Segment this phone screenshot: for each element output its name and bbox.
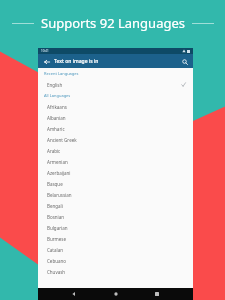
staticText: Bosnian [47, 214, 65, 220]
button[interactable]: Azerbaijani [38, 167, 193, 178]
staticText: Armenian [47, 159, 68, 165]
staticText: Burmese [47, 236, 67, 242]
button[interactable]: Bulgarian [38, 222, 193, 233]
button[interactable]: Arabic [38, 145, 193, 156]
button[interactable]: Bosnian [38, 211, 193, 222]
staticText: 10:41 [41, 49, 49, 53]
staticText: Text on image is in [54, 58, 99, 65]
button[interactable]: Home [111, 289, 121, 299]
button[interactable]: Armenian [38, 156, 193, 167]
staticText: Bulgarian [47, 225, 68, 231]
staticText: Catalan [47, 247, 63, 253]
button[interactable]: Catalan [38, 244, 193, 255]
button[interactable]: Albanian [38, 112, 193, 123]
staticText: Basque [47, 181, 63, 187]
staticText: Afrikaans [47, 104, 67, 110]
staticText: English [47, 82, 63, 88]
button[interactable]: English [38, 79, 193, 90]
button[interactable]: Back [42, 57, 51, 66]
staticText: Ancient Greek [47, 137, 77, 143]
staticText: Chuvash [47, 269, 66, 275]
button[interactable]: Recent apps [152, 289, 162, 299]
button[interactable]: Cebuano [38, 255, 193, 266]
button[interactable]: Bengali [38, 200, 193, 211]
button[interactable]: Back [69, 289, 79, 299]
staticText: Cebuano [47, 258, 66, 264]
staticText: Bengali [47, 203, 63, 209]
staticText: Recent Languages [44, 71, 79, 76]
button[interactable]: Ancient Greek [38, 134, 193, 145]
button[interactable]: Amharic [38, 123, 193, 134]
staticText: Albanian [47, 115, 66, 121]
staticText: Belarussian [47, 192, 72, 198]
button[interactable]: Basque [38, 178, 193, 189]
staticText: Amharic [47, 126, 65, 132]
button[interactable]: Afrikaans [38, 101, 193, 112]
button[interactable]: Belarussian [38, 189, 193, 200]
staticText: Supports 92 Languages [41, 14, 185, 32]
staticText: Azerbaijani [47, 170, 71, 176]
staticText: Arabic [47, 148, 61, 154]
staticText: All Languages [44, 93, 71, 98]
button[interactable]: Chuvash [38, 266, 193, 277]
button[interactable]: Search [180, 57, 189, 66]
button[interactable]: Burmese [38, 233, 193, 244]
